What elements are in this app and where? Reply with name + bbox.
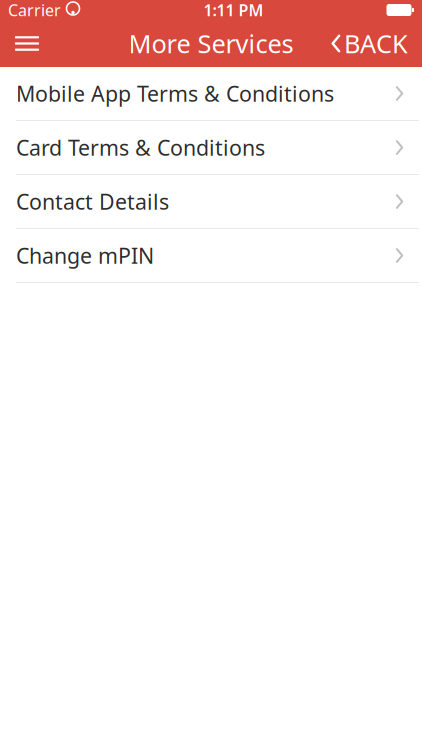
staticText: BACK [344,27,408,60]
button[interactable]: Contact Details [0,175,422,228]
staticText: Carrier [8,0,61,21]
button[interactable]: Change mPIN [0,229,422,282]
staticText: Card Terms & Conditions [16,133,265,162]
button[interactable]: Menu [0,20,54,67]
button[interactable]: Mobile App Terms & Conditions [0,67,422,120]
button[interactable]: Card Terms & Conditions [0,121,422,174]
staticText: 1:11 PM [203,0,263,21]
staticText: Contact Details [16,187,169,216]
button[interactable]: BACK [316,20,422,67]
staticText: Mobile App Terms & Conditions [16,79,334,108]
staticText: Change mPIN [16,241,154,270]
staticText: More Services [128,27,293,60]
